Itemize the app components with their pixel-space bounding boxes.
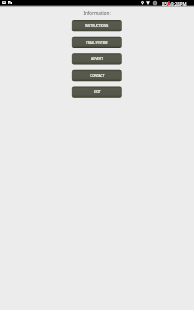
- button[interactable]: INSTRUCTIONS: [72, 20, 122, 31]
- staticText: ADVERT: [91, 57, 104, 61]
- staticText: CONTACT: [90, 74, 105, 78]
- staticText: Information:: [0, 10, 194, 16]
- other: Storage: [8, 1, 12, 4]
- staticText: 85%: [162, 1, 171, 7]
- button[interactable]: CONTACT: [72, 70, 122, 81]
- staticText: 9:28PM: [171, 1, 187, 7]
- other: Sync: [153, 1, 157, 5]
- staticText: TRAIL SYSTEM: [86, 41, 108, 45]
- button[interactable]: ADVERT: [72, 53, 122, 64]
- button[interactable]: TRAIL SYSTEM: [72, 37, 122, 48]
- other: Wi-Fi: [146, 1, 150, 5]
- other: Notification: [2, 1, 6, 4]
- staticText: INSTRUCTIONS: [85, 24, 109, 28]
- button[interactable]: EXIT: [72, 86, 122, 97]
- other: Location: [141, 1, 144, 5]
- staticText: EXIT: [94, 90, 101, 94]
- other: Battery: [168, 1, 170, 5]
